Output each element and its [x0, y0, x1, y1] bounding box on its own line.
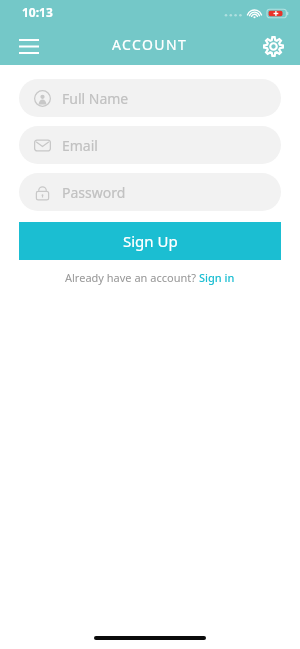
button[interactable]: Sign Up [19, 222, 281, 260]
staticText: Email [62, 136, 98, 155]
button[interactable]: Sign in [199, 270, 235, 285]
button[interactable]: Email [19, 126, 281, 164]
staticText: Password [62, 183, 126, 202]
staticText: ACCOUNT [112, 35, 188, 54]
staticText: Full Name [62, 89, 129, 108]
button[interactable]: Menu [12, 29, 46, 63]
button[interactable]: Full Name [19, 79, 281, 117]
staticText: Sign in [199, 270, 235, 285]
button[interactable]: Settings [256, 29, 290, 63]
staticText: Already have an account? [65, 270, 199, 285]
button[interactable]: Password [19, 173, 281, 211]
staticText: Sign Up [123, 231, 178, 251]
staticText: 10:13 [22, 4, 53, 20]
